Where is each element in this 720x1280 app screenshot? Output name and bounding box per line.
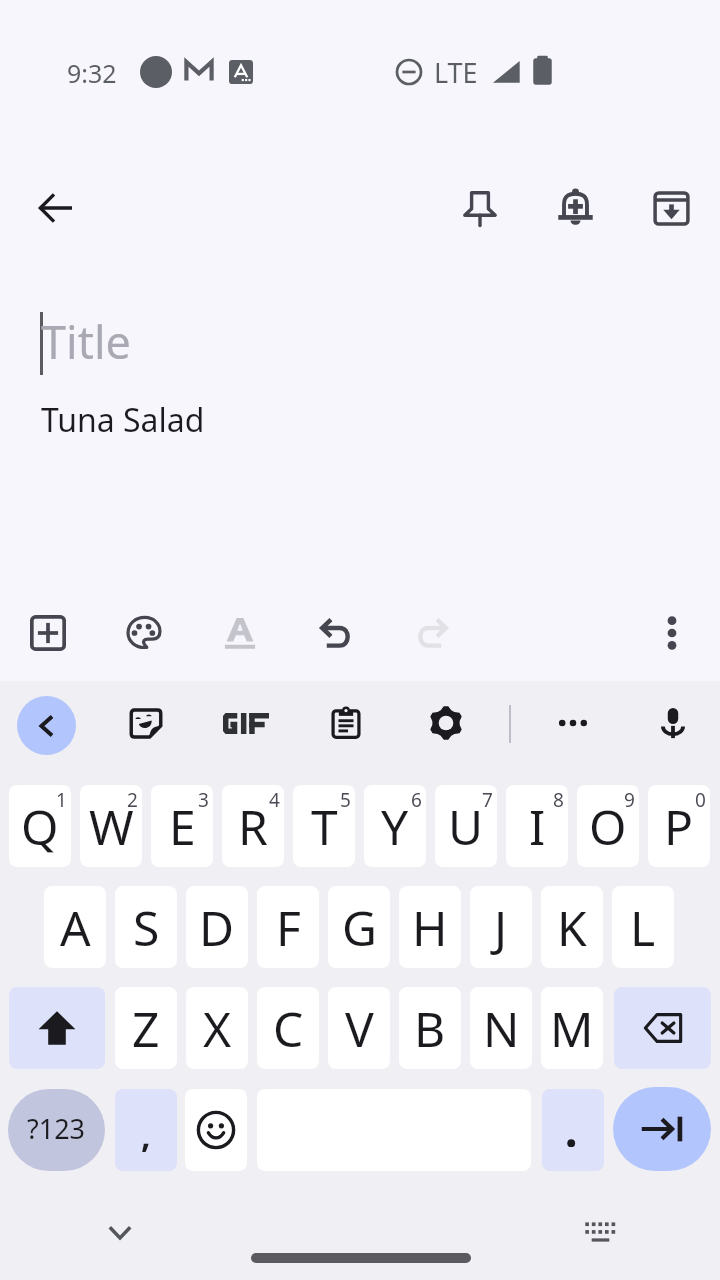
button[interactable]: P	[648, 785, 710, 867]
button[interactable]: Clipboard	[318, 695, 374, 751]
button[interactable]: J	[470, 886, 532, 968]
button[interactable]: Formatting	[208, 601, 272, 665]
button[interactable]: Settings	[418, 695, 474, 751]
staticText: Q	[21, 794, 59, 859]
button[interactable]: W	[80, 785, 142, 867]
button[interactable]: Undo	[304, 601, 368, 665]
staticText: R	[238, 794, 268, 859]
staticText: ?123	[27, 1110, 86, 1147]
button[interactable]: Pin	[448, 176, 512, 240]
button[interactable]: U	[435, 785, 497, 867]
staticText: T	[311, 794, 338, 859]
staticText: K	[557, 895, 587, 960]
button[interactable]: L	[612, 886, 674, 968]
button[interactable]: GIF	[218, 695, 274, 751]
button[interactable]: Redo	[400, 601, 464, 665]
staticText: I	[529, 794, 546, 859]
button[interactable]: Switch keyboard	[572, 1204, 628, 1260]
button[interactable]: Comma	[115, 1089, 177, 1171]
button[interactable]: A	[44, 886, 106, 968]
button[interactable]: F	[257, 886, 319, 968]
staticText: L	[630, 895, 656, 960]
button[interactable]: Symbols	[8, 1089, 105, 1171]
button[interactable]: Add	[16, 601, 80, 665]
staticText: A	[60, 895, 91, 960]
staticText: S	[133, 895, 160, 960]
staticText: ,	[141, 1112, 151, 1158]
staticText: 2	[127, 787, 138, 813]
staticText: N	[483, 996, 520, 1061]
staticText: D	[199, 895, 235, 960]
button[interactable]: More options	[640, 601, 704, 665]
button[interactable]: Hide keyboard	[92, 1204, 148, 1260]
button[interactable]: C	[257, 987, 319, 1069]
button[interactable]: Archive	[639, 176, 703, 240]
button[interactable]: Z	[115, 987, 177, 1069]
button[interactable]: Y	[364, 785, 426, 867]
button[interactable]: Q	[9, 785, 71, 867]
staticText: F	[276, 895, 301, 960]
button[interactable]: Stickers	[118, 695, 174, 751]
staticText: U	[448, 794, 484, 859]
button[interactable]: More	[545, 695, 601, 751]
button[interactable]: B	[399, 987, 461, 1069]
button[interactable]: Background options	[112, 601, 176, 665]
button[interactable]: N	[470, 987, 532, 1069]
staticText: W	[89, 794, 134, 859]
staticText: G	[342, 895, 377, 960]
staticText: 9:32	[67, 56, 117, 90]
staticText: LTE	[434, 54, 478, 91]
staticText: P	[664, 794, 694, 859]
button[interactable]: X	[186, 987, 248, 1069]
staticText: C	[273, 996, 304, 1061]
staticText: E	[169, 794, 196, 859]
staticText: Z	[132, 996, 160, 1061]
button[interactable]: D	[186, 886, 248, 968]
staticText: 7	[482, 787, 493, 813]
button[interactable]: O	[577, 785, 639, 867]
staticText: 8	[553, 787, 564, 813]
staticText: V	[345, 996, 374, 1061]
button[interactable]: H	[399, 886, 461, 968]
staticText: X	[203, 996, 232, 1061]
button[interactable]: Emoji	[185, 1089, 247, 1171]
button[interactable]: K	[541, 886, 603, 968]
staticText: 3	[198, 787, 209, 813]
staticText: Title	[41, 311, 131, 372]
staticText: M	[550, 996, 594, 1061]
button[interactable]: Reminder	[543, 176, 607, 240]
button[interactable]: Voice input	[645, 695, 701, 751]
staticText: 1	[56, 787, 67, 813]
staticText: Y	[381, 794, 409, 859]
button[interactable]: S	[115, 886, 177, 968]
staticText: 9	[624, 787, 635, 813]
button[interactable]: Backspace	[614, 987, 711, 1069]
staticText: 0	[695, 787, 706, 813]
staticText: Tuna Salad	[41, 398, 205, 442]
button[interactable]: Shift	[9, 987, 105, 1069]
staticText: H	[412, 895, 448, 960]
button[interactable]: G	[328, 886, 390, 968]
button[interactable]: E	[151, 785, 213, 867]
button[interactable]: Enter	[613, 1087, 711, 1171]
button[interactable]: Period	[542, 1089, 604, 1171]
button[interactable]: I	[506, 785, 568, 867]
staticText: J	[494, 895, 508, 960]
staticText: B	[414, 996, 446, 1061]
button[interactable]: Back	[24, 176, 88, 240]
button[interactable]: M	[541, 987, 603, 1069]
staticText: 5	[340, 787, 351, 813]
button[interactable]: R	[222, 785, 284, 867]
staticText: 4	[269, 787, 280, 813]
button[interactable]: T	[293, 785, 355, 867]
staticText: O	[589, 794, 627, 859]
staticText: 6	[411, 787, 422, 813]
button[interactable]: V	[328, 987, 390, 1069]
button[interactable]: Back	[17, 696, 76, 755]
